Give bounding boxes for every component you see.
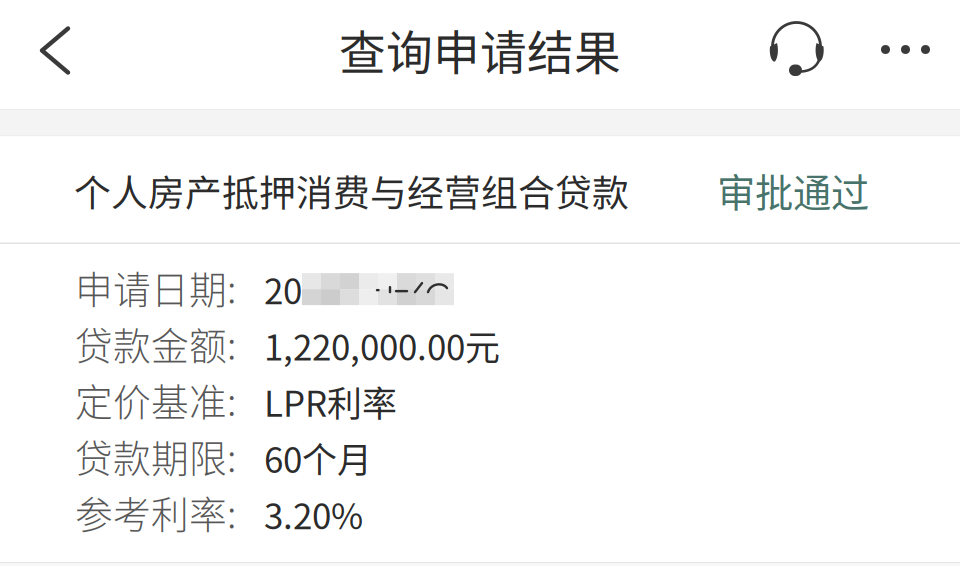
staticText: 贷款期限:: [75, 429, 236, 483]
staticText: 贷款金额:: [75, 316, 236, 371]
staticText: LPR利率: [264, 376, 397, 427]
staticText: 20: [264, 264, 302, 314]
staticText: 定价基准:: [75, 372, 236, 427]
staticText: 60个月: [264, 433, 372, 483]
staticText: 审批通过: [717, 163, 869, 218]
button[interactable]: 在线客服: [783, 4, 869, 104]
staticText: 查询申请结果: [339, 16, 621, 83]
staticText: 申请日期:: [75, 260, 236, 314]
button[interactable]: 返回: [0, 4, 96, 104]
staticText: 3.20%: [264, 489, 363, 539]
staticText: 参考利率:: [75, 485, 236, 539]
staticText: 个人房产抵押消费与经营组合贷款: [74, 164, 629, 217]
button[interactable]: 更多: [869, 4, 950, 104]
staticText: 1,220,000.00元: [264, 320, 500, 371]
